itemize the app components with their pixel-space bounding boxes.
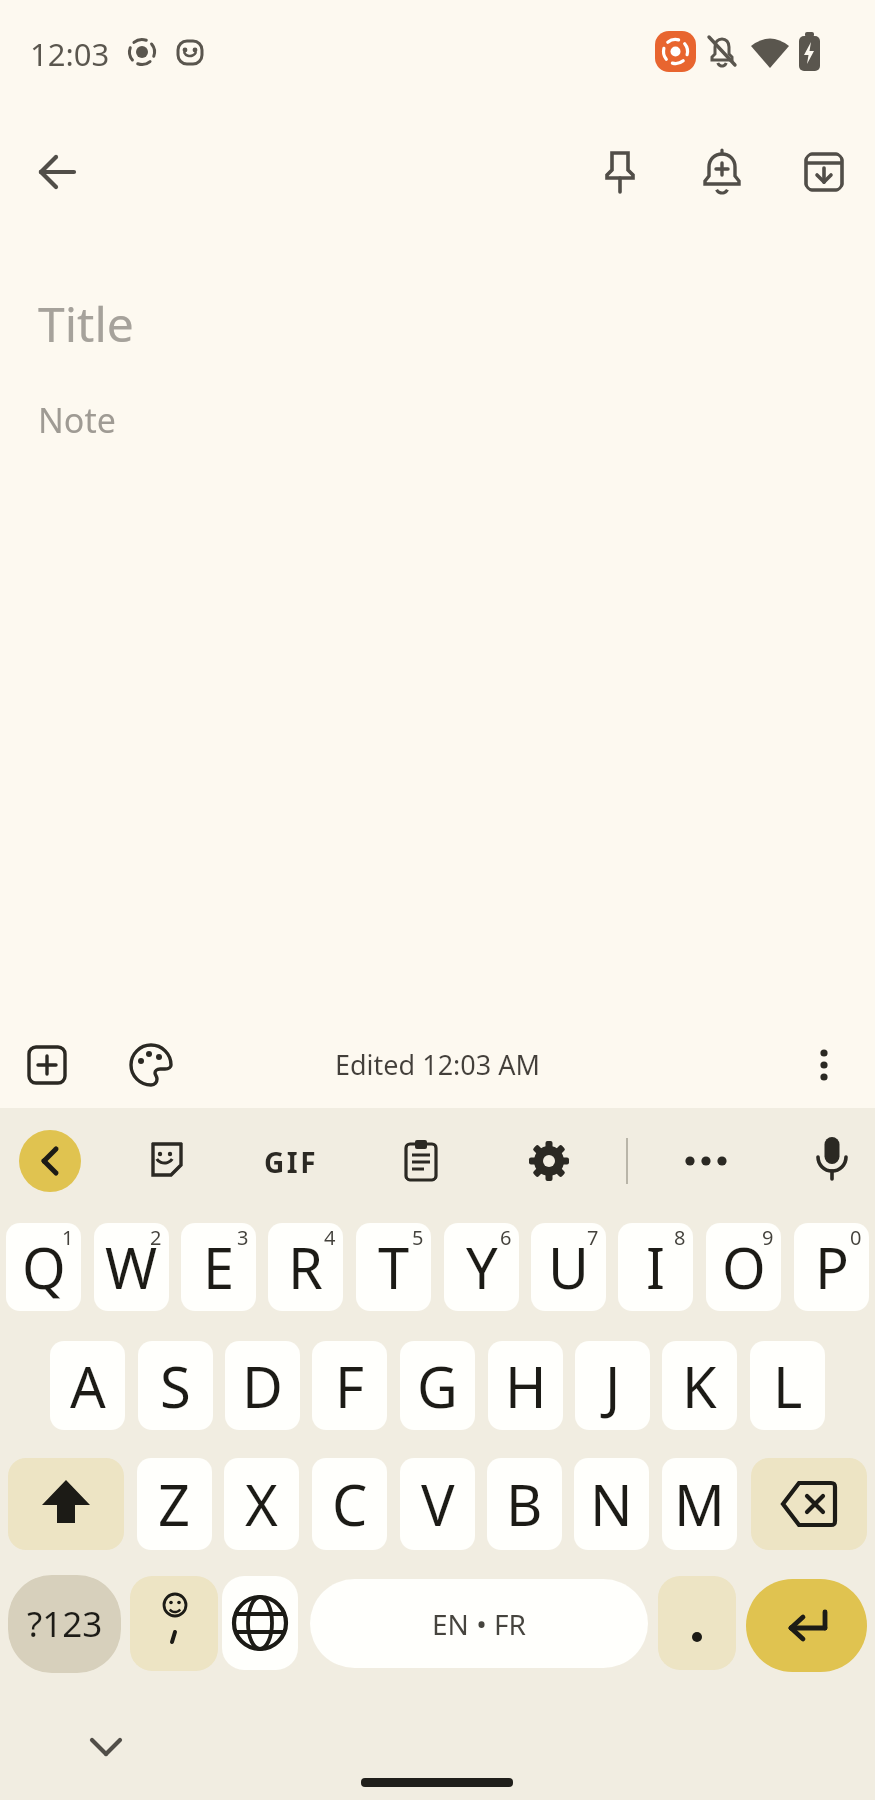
staticText: Y <box>466 1229 498 1305</box>
button[interactable]: C <box>312 1458 387 1550</box>
button[interactable]: A <box>50 1341 125 1430</box>
staticText: 3 <box>237 1224 249 1251</box>
staticText: 1 <box>62 1224 74 1251</box>
button[interactable] <box>799 1040 849 1090</box>
button[interactable]: ?123 <box>8 1575 121 1673</box>
staticText: N <box>590 1466 633 1542</box>
button[interactable] <box>19 1130 81 1192</box>
staticText: 4 <box>324 1224 336 1251</box>
button[interactable]: Title <box>38 291 134 356</box>
button[interactable]: N <box>574 1458 649 1550</box>
button[interactable]: GIF <box>264 1143 319 1181</box>
staticText: H <box>505 1348 547 1424</box>
staticText: J <box>605 1348 621 1424</box>
button[interactable] <box>800 148 848 196</box>
button[interactable] <box>698 148 746 196</box>
staticText: R <box>288 1229 323 1305</box>
staticText: 8 <box>674 1224 686 1251</box>
button[interactable] <box>658 1576 736 1670</box>
button[interactable]: V <box>400 1458 475 1550</box>
button[interactable]: Y <box>444 1223 519 1311</box>
staticText: 12:03 <box>30 33 110 75</box>
staticText: T <box>378 1229 410 1305</box>
staticText: Title <box>38 291 134 356</box>
button[interactable]: R <box>268 1223 343 1311</box>
staticText: F <box>335 1348 365 1424</box>
button[interactable]: E <box>181 1223 256 1311</box>
staticText: Q <box>22 1229 66 1305</box>
button[interactable] <box>746 1579 867 1672</box>
staticText: I <box>646 1229 665 1305</box>
staticText: S <box>160 1348 191 1424</box>
button[interactable] <box>143 1137 191 1185</box>
button[interactable]: Q <box>6 1223 81 1311</box>
button[interactable]: M <box>662 1458 737 1550</box>
staticText: M <box>674 1466 725 1542</box>
staticText: V <box>421 1466 455 1542</box>
button[interactable]: F <box>312 1341 387 1430</box>
staticText: 2 <box>150 1224 162 1251</box>
button[interactable] <box>222 1576 298 1670</box>
button[interactable]: EN • FR <box>310 1579 648 1668</box>
staticText: K <box>682 1348 717 1424</box>
staticText: Edited 12:03 AM <box>335 1046 540 1082</box>
staticText: G <box>417 1348 458 1424</box>
staticText: 0 <box>850 1224 862 1251</box>
button[interactable]: L <box>750 1341 825 1430</box>
button[interactable] <box>33 148 81 196</box>
button[interactable]: Note <box>38 397 116 443</box>
button[interactable]: X <box>224 1458 299 1550</box>
button[interactable] <box>130 1576 218 1671</box>
staticText: L <box>773 1348 803 1424</box>
staticText: Note <box>38 397 116 443</box>
staticText: P <box>815 1229 849 1305</box>
button[interactable]: T <box>356 1223 431 1311</box>
staticText: E <box>203 1229 235 1305</box>
staticText: 6 <box>500 1224 512 1251</box>
button[interactable] <box>682 1137 730 1185</box>
staticText: 9 <box>762 1224 774 1251</box>
button[interactable] <box>8 1458 124 1550</box>
staticText: EN • FR <box>432 1605 526 1643</box>
button[interactable] <box>397 1137 445 1185</box>
staticText: X <box>245 1466 278 1542</box>
button[interactable]: P <box>794 1223 869 1311</box>
button[interactable] <box>22 1040 72 1090</box>
button[interactable] <box>807 1134 857 1184</box>
button[interactable]: Z <box>137 1458 212 1550</box>
button[interactable]: D <box>225 1341 300 1430</box>
staticText: GIF <box>264 1143 319 1181</box>
staticText: B <box>506 1466 543 1542</box>
staticText: O <box>722 1229 766 1305</box>
staticText: D <box>242 1348 283 1424</box>
staticText: A <box>70 1348 106 1424</box>
button[interactable] <box>126 1040 176 1090</box>
button[interactable]: W <box>94 1223 169 1311</box>
button[interactable]: J <box>575 1341 650 1430</box>
button[interactable]: H <box>488 1341 563 1430</box>
button[interactable] <box>751 1458 867 1550</box>
staticText: Z <box>158 1466 191 1542</box>
button[interactable]: I <box>618 1223 693 1311</box>
button[interactable] <box>525 1137 573 1185</box>
button[interactable]: B <box>487 1458 562 1550</box>
button[interactable]: K <box>662 1341 737 1430</box>
staticText: ?123 <box>27 1600 103 1648</box>
button[interactable]: G <box>400 1341 475 1430</box>
button[interactable]: U <box>531 1223 606 1311</box>
staticText: W <box>105 1229 158 1305</box>
staticText: U <box>548 1229 589 1305</box>
button[interactable] <box>596 148 644 196</box>
button[interactable]: O <box>706 1223 781 1311</box>
staticText: C <box>332 1466 368 1542</box>
staticText: 7 <box>587 1224 599 1251</box>
staticText: 5 <box>412 1224 424 1251</box>
button[interactable]: S <box>138 1341 213 1430</box>
